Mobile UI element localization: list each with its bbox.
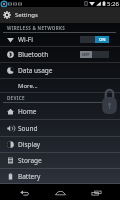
button[interactable]: Wi-Fi [0,33,120,46]
staticText: Sound [18,124,38,133]
staticText: Settings [15,11,38,19]
button[interactable]: ON [80,36,109,43]
staticText: Home [18,107,37,116]
staticText: OFF [82,52,90,57]
staticText: 5:26 [107,0,119,7]
button[interactable]: Storage [0,153,120,168]
staticText: Data usage [18,66,53,75]
button[interactable]: Data usage [0,63,120,78]
staticText: Bluetooth [18,50,49,59]
staticText: WIRELESS & NETWORKS [7,25,66,31]
staticText: Wi-Fi [18,35,33,44]
button[interactable]: Recent apps [78,184,114,200]
staticText: ON [99,37,106,42]
button[interactable]: Screen lock [101,88,118,115]
button[interactable]: Sound [0,120,120,136]
button[interactable]: More... [0,79,120,92]
button[interactable]: Home [42,184,78,200]
button[interactable]: Home [0,103,120,119]
staticText: Display [18,140,41,149]
staticText: Battery [18,172,41,181]
button[interactable]: Back [6,184,42,200]
staticText: Storage [18,156,42,165]
button[interactable]: Bluetooth [0,47,120,62]
button[interactable]: Display [0,137,120,152]
staticText: DEVICE [7,95,25,101]
button[interactable]: OFF [80,51,109,58]
button[interactable]: Battery [0,169,120,183]
staticText: More... [18,82,38,90]
